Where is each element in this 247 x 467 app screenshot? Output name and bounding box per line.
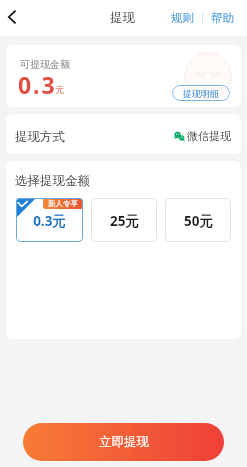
staticText: 0.3元: [33, 212, 66, 230]
staticText: 选择提现金额: [15, 173, 90, 189]
staticText: 50元: [184, 212, 213, 230]
staticText: 提现: [110, 10, 135, 26]
button[interactable]: 帮助: [211, 11, 234, 25]
button[interactable]: 50元: [165, 198, 231, 242]
staticText: 微信提现: [187, 129, 231, 143]
staticText: 25元: [110, 212, 139, 230]
button[interactable]: 提现明细: [172, 85, 230, 101]
button[interactable]: 25元: [91, 198, 157, 242]
staticText: 可提现金额: [20, 58, 70, 71]
staticText: 提现方式: [15, 129, 65, 145]
staticText: 元: [55, 84, 64, 95]
button[interactable]: 提现方式: [6, 114, 241, 154]
staticText: 立即提现: [99, 434, 149, 450]
button[interactable]: Back: [0, 3, 23, 33]
staticText: 0.3: [18, 69, 57, 100]
button[interactable]: 立即提现: [23, 423, 224, 461]
staticText: 提现明细: [183, 88, 219, 99]
button[interactable]: 新人专享: [16, 198, 83, 242]
staticText: 新人专享: [48, 199, 78, 208]
button[interactable]: 规则: [171, 11, 194, 25]
